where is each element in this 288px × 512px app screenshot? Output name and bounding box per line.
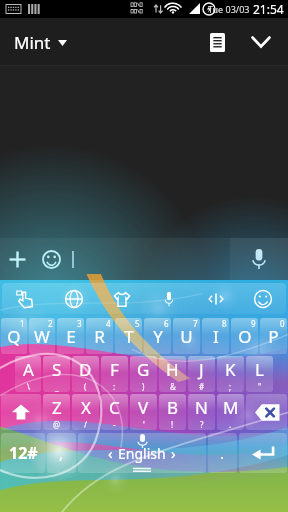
button[interactable]: 0: [260, 318, 287, 354]
staticText: N: [195, 396, 208, 419]
button[interactable]: C: [101, 394, 128, 430]
button[interactable]: Notes list: [200, 25, 234, 59]
staticText: K: [225, 358, 236, 381]
staticText: V: [138, 396, 149, 419]
staticText: F: [110, 358, 119, 381]
staticText: 2: [48, 318, 53, 329]
staticText: D: [79, 358, 92, 381]
button[interactable]: Shift: [1, 394, 41, 430]
button[interactable]: 2: [29, 318, 55, 354]
button[interactable]: J: [188, 356, 215, 392]
staticText: ": [258, 381, 262, 392]
button[interactable]: Language: [50, 283, 98, 314]
staticText: _: [55, 381, 59, 392]
staticText: ›: [171, 443, 176, 463]
staticText: 4: [106, 318, 111, 329]
button[interactable]: 4: [86, 318, 113, 354]
staticText: -: [113, 419, 116, 430]
button[interactable]: Keyboard settings: [2, 283, 50, 314]
button[interactable]: Emoji: [34, 238, 68, 280]
staticText: 21:54: [253, 1, 284, 17]
staticText: #: [199, 381, 205, 392]
button[interactable]: Enter: [239, 433, 287, 473]
staticText: G: [137, 358, 150, 381]
staticText: 8: [222, 318, 227, 329]
button[interactable]: X: [72, 394, 99, 430]
button[interactable]: Theme: [98, 283, 145, 314]
button[interactable]: Voice input: [230, 238, 288, 280]
button[interactable]: 8: [202, 318, 229, 354]
staticText: ,: [59, 443, 64, 463]
staticText: Tue 03/03: [208, 3, 250, 15]
button[interactable]: B: [159, 394, 186, 430]
button[interactable]: 6: [144, 318, 171, 354]
button[interactable]: G: [130, 356, 157, 392]
button[interactable]: Emoji: [239, 283, 286, 314]
staticText: .: [220, 443, 225, 463]
button[interactable]: .: [208, 433, 237, 473]
staticText: .: [229, 419, 232, 430]
button[interactable]: 3: [57, 318, 84, 354]
staticText: C: [109, 396, 120, 419]
staticText: Mint: [14, 31, 51, 54]
button[interactable]: Backspace: [246, 394, 287, 430]
button[interactable]: [68, 238, 230, 280]
staticText: W: [34, 325, 50, 348]
staticText: (: [84, 381, 87, 392]
button[interactable]: K: [217, 356, 244, 392]
staticText: ): [142, 381, 145, 392]
staticText: 5: [135, 318, 140, 329]
staticText: English: [118, 444, 166, 463]
staticText: 1: [20, 318, 25, 329]
button[interactable]: Voice input: [145, 283, 192, 314]
button[interactable]: F: [101, 356, 128, 392]
button[interactable]: Collapse: [244, 25, 278, 59]
button[interactable]: 12#: [1, 433, 45, 473]
staticText: A: [23, 358, 34, 381]
staticText: E: [66, 325, 76, 348]
staticText: H: [166, 358, 179, 381]
staticText: L: [255, 358, 264, 381]
button[interactable]: A: [15, 356, 41, 392]
button[interactable]: Add attachment: [0, 238, 34, 280]
button[interactable]: 7: [173, 318, 200, 354]
staticText: O: [238, 325, 252, 348]
staticText: :: [113, 381, 116, 392]
button[interactable]: M: [217, 394, 244, 430]
staticText: M: [223, 396, 239, 419]
staticText: 9: [251, 318, 256, 329]
staticText: Y: [153, 325, 163, 348]
button[interactable]: H: [159, 356, 186, 392]
button[interactable]: 5: [115, 318, 142, 354]
button[interactable]: N: [188, 394, 215, 430]
staticText: S: [52, 358, 62, 381]
staticText: U: [180, 325, 193, 348]
staticText: I: [213, 325, 219, 348]
button[interactable]: Move cursor: [192, 283, 239, 314]
staticText: Q: [7, 325, 21, 348]
button[interactable]: ,: [47, 433, 76, 473]
button[interactable]: Mint: [12, 25, 69, 60]
button[interactable]: V: [130, 394, 157, 430]
staticText: /: [84, 419, 87, 430]
staticText: ‹: [108, 443, 113, 463]
staticText: ': [143, 419, 145, 430]
staticText: @: [53, 419, 61, 430]
staticText: &: [170, 381, 176, 392]
button[interactable]: D: [72, 356, 99, 392]
staticText: 6: [164, 318, 169, 329]
staticText: J: [199, 358, 204, 381]
staticText: P: [268, 325, 279, 348]
staticText: Z: [52, 396, 62, 419]
staticText: R: [94, 325, 105, 348]
staticText: ;: [229, 381, 232, 392]
staticText: 12#: [9, 442, 38, 464]
staticText: \: [27, 381, 30, 392]
button[interactable]: 9: [231, 318, 258, 354]
button[interactable]: 1: [1, 318, 27, 354]
button[interactable]: Space, English: [78, 433, 206, 473]
button[interactable]: S: [43, 356, 70, 392]
button[interactable]: L: [246, 356, 273, 392]
staticText: T: [124, 325, 134, 348]
button[interactable]: Z: [43, 394, 70, 430]
